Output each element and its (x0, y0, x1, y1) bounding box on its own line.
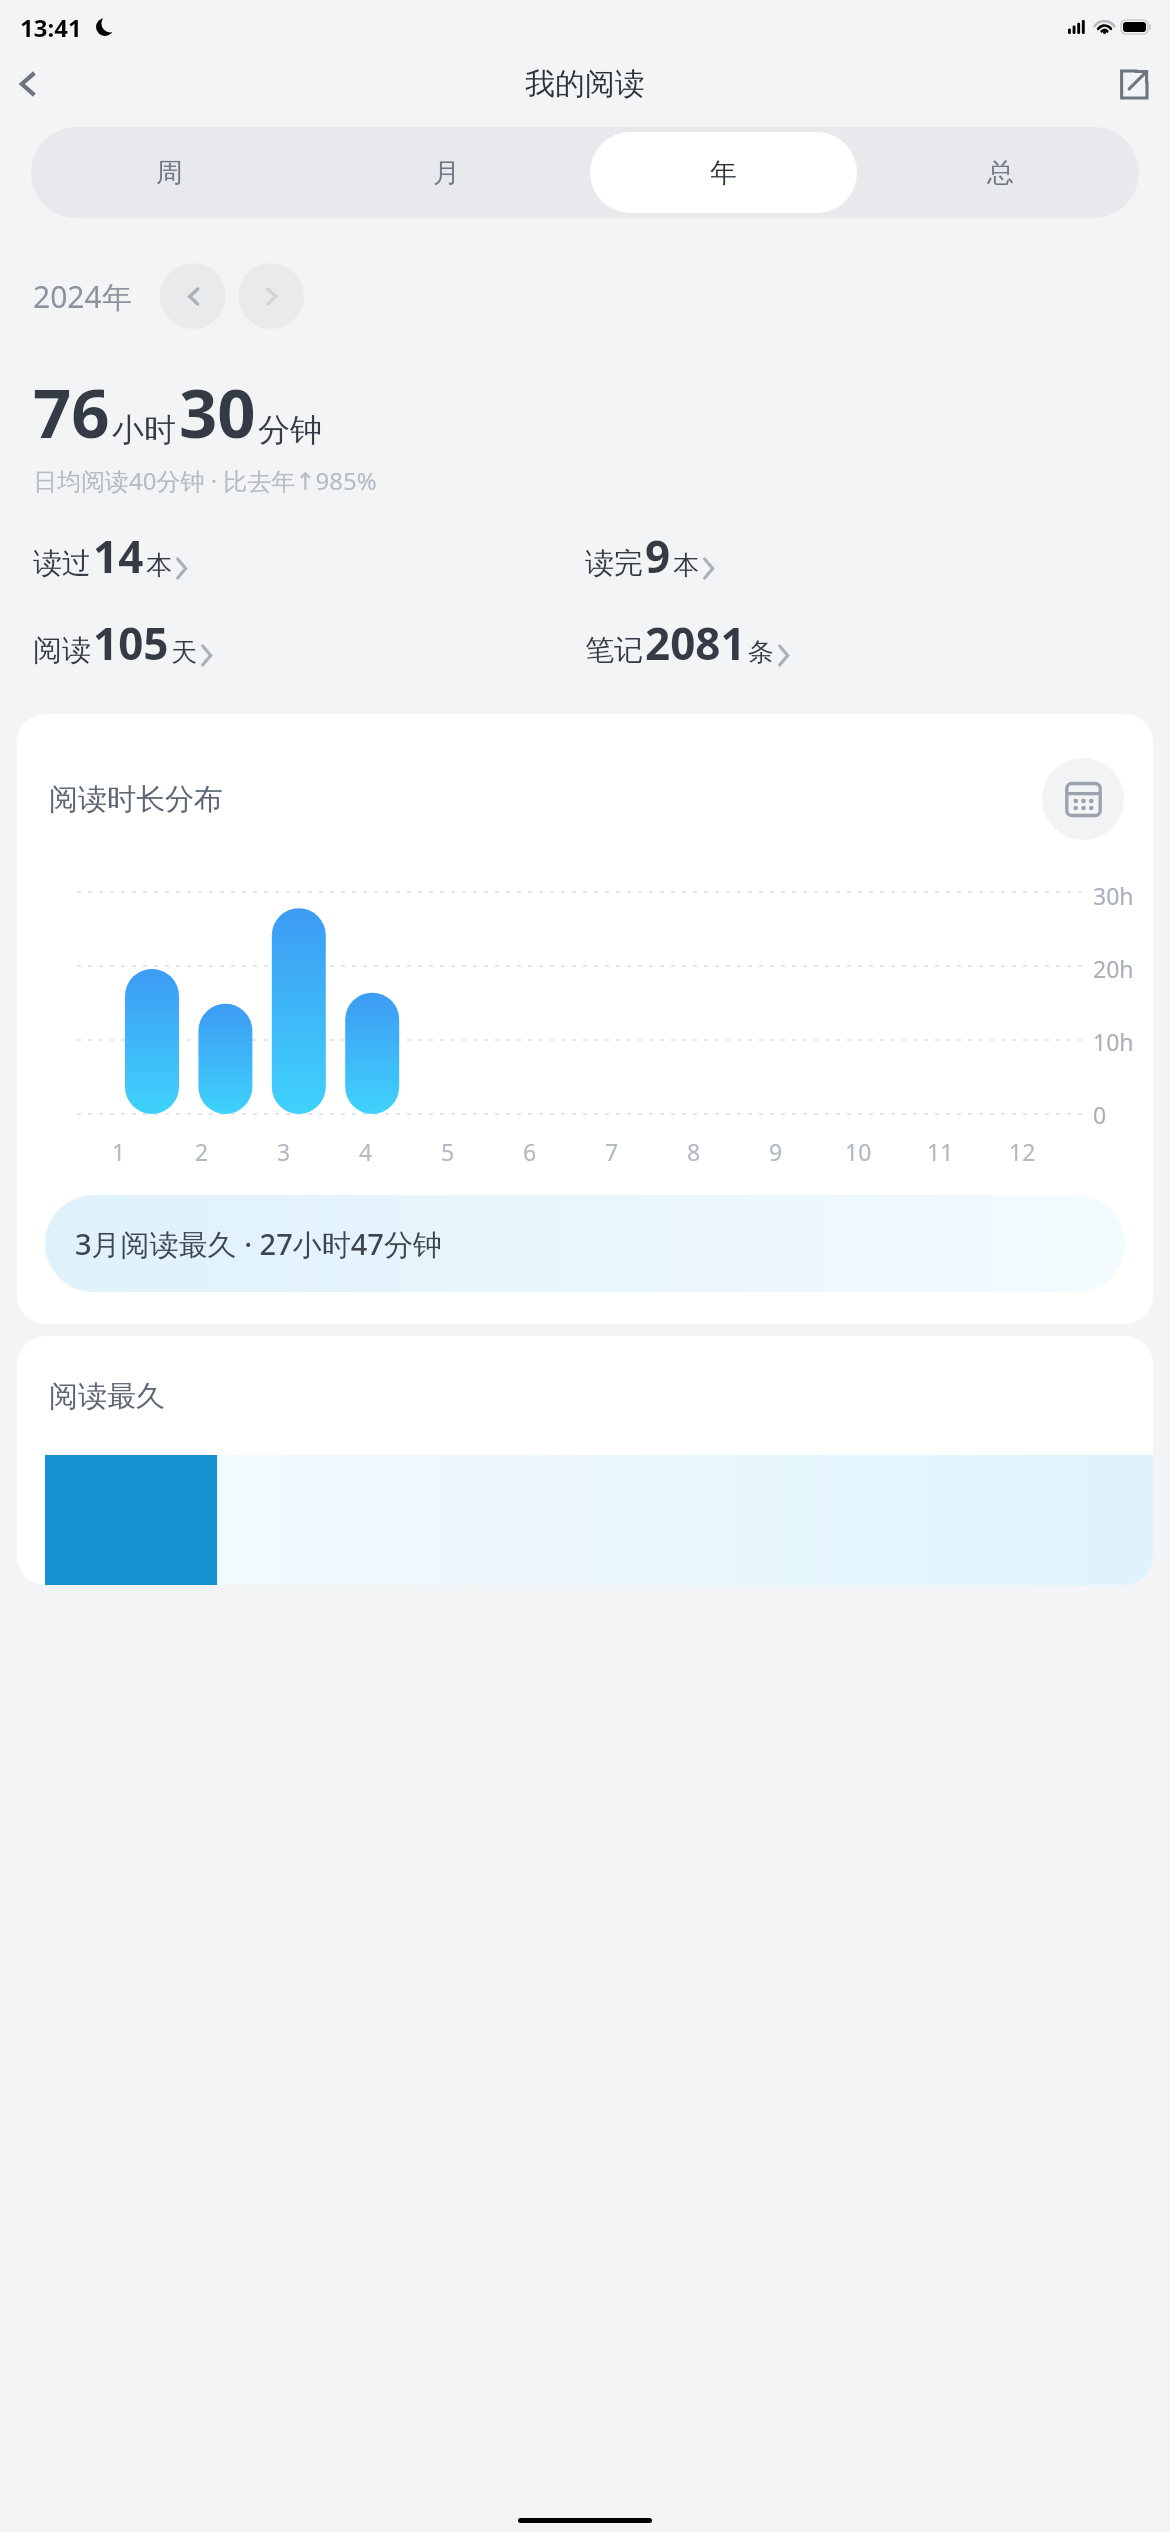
staticText: 分钟 (258, 410, 322, 450)
button[interactable]: Back (6, 62, 50, 106)
button[interactable]: 月 (313, 132, 580, 213)
button[interactable]: 3月阅读最久 · 27小时47分钟 (45, 1195, 1125, 1292)
staticText: 天 (171, 636, 197, 669)
staticText: 周 (156, 156, 183, 190)
button[interactable]: 年 (590, 132, 857, 213)
button[interactable]: 总 (867, 132, 1134, 213)
staticText: 14 (93, 526, 144, 586)
staticText: 9 (769, 1136, 783, 1167)
staticText: 2081 (645, 613, 746, 673)
staticText: 本 (146, 549, 172, 582)
button[interactable]: Calendar (1042, 758, 1124, 840)
staticText: 阅读 (33, 632, 91, 669)
button[interactable]: Next year (238, 263, 304, 329)
staticText: 4 (359, 1136, 373, 1167)
staticText: 30h (1093, 880, 1134, 911)
staticText: 日均阅读40分钟 · 比去年↑985% (33, 464, 377, 497)
staticText: 3 (277, 1136, 291, 1167)
staticText: 2024年 (33, 276, 132, 317)
button[interactable]: 周 (36, 132, 303, 213)
staticText: 76 (33, 366, 110, 457)
staticText: 3月阅读最久 · 27小时47分钟 (75, 1224, 442, 1264)
staticText: 6 (523, 1136, 537, 1167)
staticText: 阅读时长分布 (49, 781, 223, 818)
staticText: 年 (710, 156, 737, 190)
staticText: 月 (433, 156, 460, 190)
staticText: 30 (179, 366, 256, 457)
staticText: 本 (673, 549, 699, 582)
staticText: 7 (605, 1136, 619, 1167)
staticText: 条 (748, 636, 774, 669)
staticText: 读完 (585, 545, 643, 582)
staticText: 13:41 (20, 11, 82, 44)
staticText: 8 (687, 1136, 701, 1167)
staticText: 我的阅读 (525, 65, 645, 103)
staticText: 10h (1093, 1026, 1134, 1057)
staticText: 5 (441, 1136, 455, 1167)
staticText: 12 (1009, 1136, 1036, 1167)
staticText: 0 (1093, 1099, 1107, 1130)
staticText: 2 (195, 1136, 209, 1167)
button[interactable]: 读完 (585, 526, 1137, 586)
button[interactable]: Previous year (160, 263, 226, 329)
staticText: 10 (845, 1136, 872, 1167)
button[interactable]: 阅读 (33, 613, 585, 673)
staticText: 1 (112, 1136, 126, 1167)
staticText: 小时 (112, 410, 176, 450)
staticText: 读过 (33, 545, 91, 582)
staticText: 20h (1093, 953, 1134, 984)
staticText: 总 (987, 156, 1014, 190)
staticText: 阅读最久 (49, 1378, 165, 1415)
button[interactable]: 笔记 (585, 613, 1137, 673)
staticText: 9 (645, 526, 671, 586)
staticText: 11 (927, 1136, 954, 1167)
staticText: 105 (93, 613, 169, 673)
button[interactable]: 读过 (33, 526, 585, 586)
button[interactable]: Share (1110, 61, 1156, 107)
staticText: 笔记 (585, 632, 643, 669)
